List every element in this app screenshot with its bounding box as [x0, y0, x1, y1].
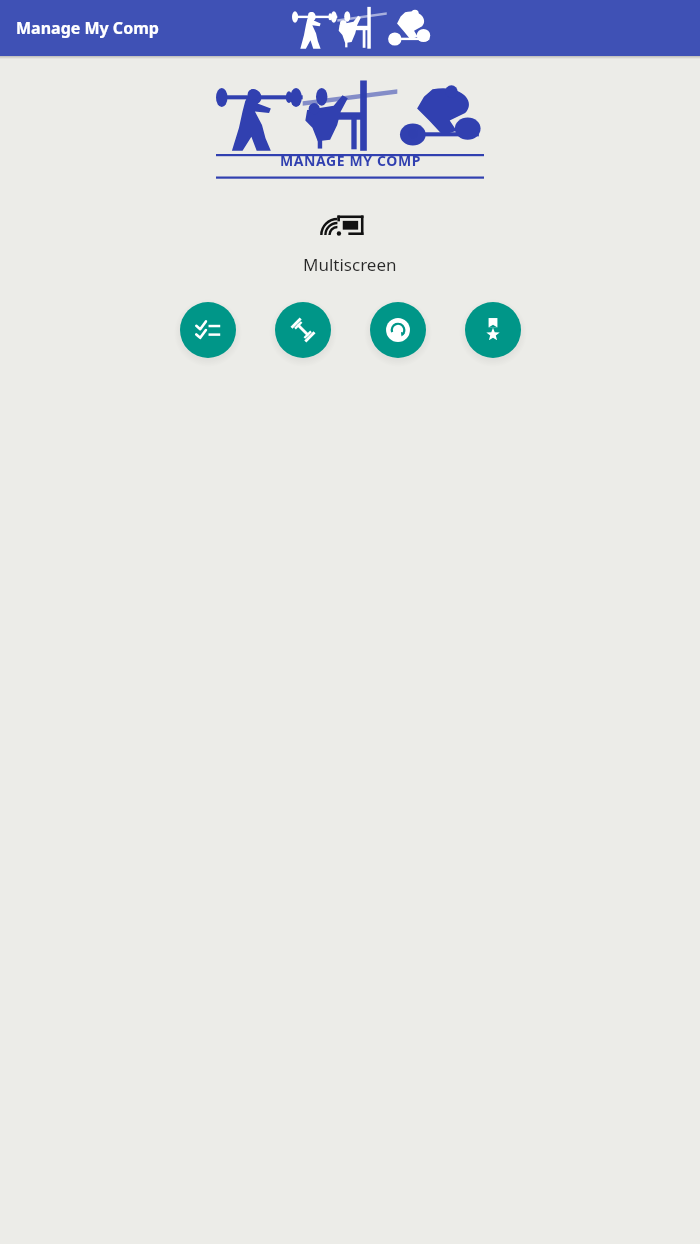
- button[interactable]: Rotate: [370, 302, 426, 358]
- button[interactable]: Checklist: [180, 302, 236, 358]
- staticText: Multiscreen: [303, 253, 397, 276]
- button[interactable]: Workout: [275, 302, 331, 358]
- staticText: MANAGE MY COMP: [280, 151, 421, 170]
- button[interactable]: Cast: [330, 206, 370, 246]
- button[interactable]: Results: [465, 302, 521, 358]
- staticText: Manage My Comp: [16, 17, 159, 39]
